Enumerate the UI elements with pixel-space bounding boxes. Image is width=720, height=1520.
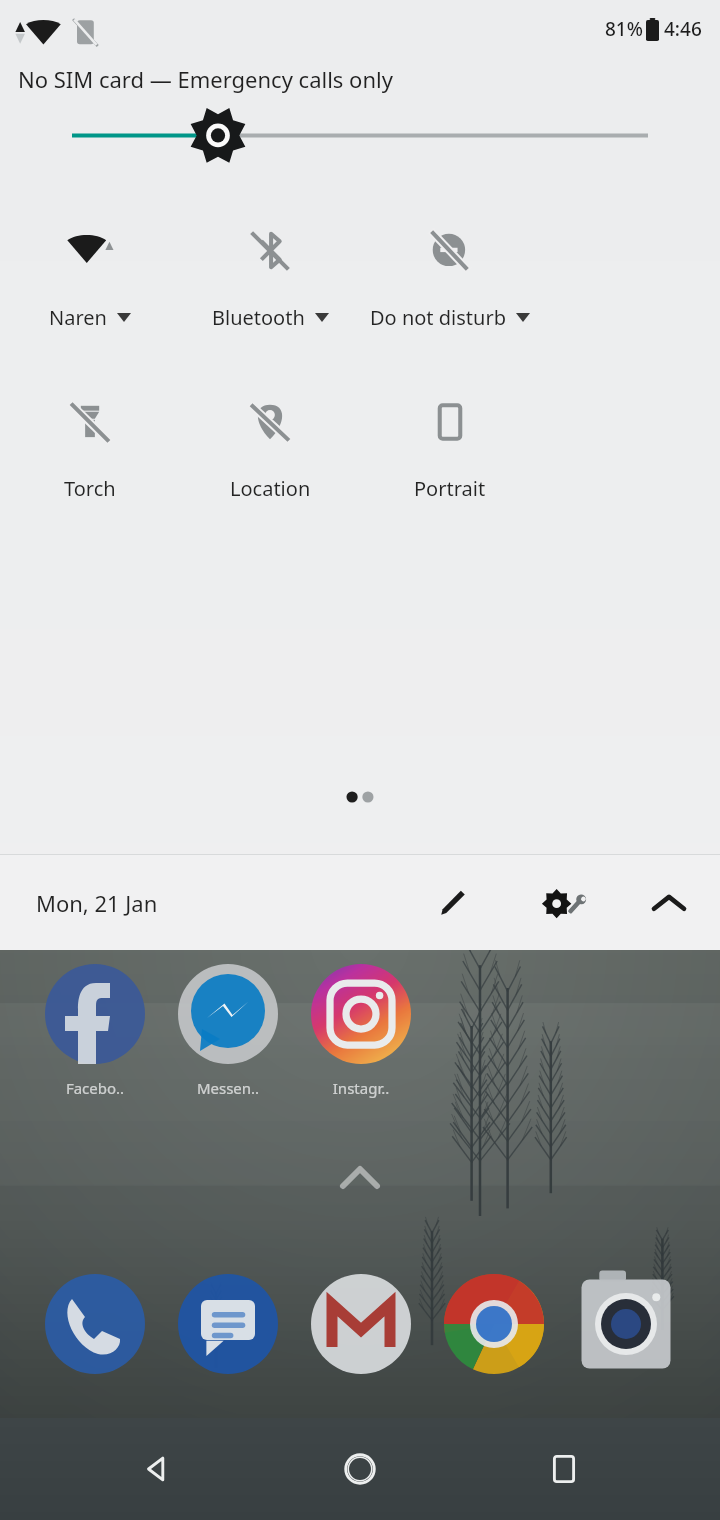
- staticText: No SIM card — Emergency calls only: [18, 64, 393, 94]
- button[interactable]: Naren: [0, 222, 180, 333]
- button[interactable]: Portrait: [360, 393, 540, 504]
- staticText: Location: [230, 475, 311, 502]
- staticText: Mon, 21 Jan: [36, 888, 158, 918]
- staticText: Torch: [64, 475, 116, 502]
- button[interactable]: Torch: [0, 393, 180, 504]
- staticText: Messen..: [168, 1078, 288, 1098]
- staticText: Naren: [49, 304, 107, 331]
- button[interactable]: Back: [108, 1421, 204, 1517]
- staticText: Bluetooth: [212, 304, 305, 331]
- button[interactable]: Recent apps: [516, 1421, 612, 1517]
- button[interactable]: Brightness: [0, 94, 720, 168]
- button[interactable]: Settings: [526, 864, 604, 942]
- staticText: Facebo..: [35, 1078, 155, 1098]
- staticText: Do not disturb: [370, 304, 506, 331]
- staticText: 4:46: [664, 16, 702, 42]
- button[interactable]: Home: [312, 1421, 408, 1517]
- button[interactable]: Do not disturb: [360, 222, 540, 333]
- button[interactable]: Bluetooth: [180, 222, 360, 333]
- button[interactable]: Edit tiles: [422, 872, 484, 934]
- button[interactable]: Location: [180, 393, 360, 504]
- staticText: Portrait: [414, 475, 486, 502]
- button[interactable]: Collapse: [638, 872, 700, 934]
- staticText: 81%: [605, 16, 643, 42]
- staticText: Instagr..: [301, 1078, 421, 1098]
